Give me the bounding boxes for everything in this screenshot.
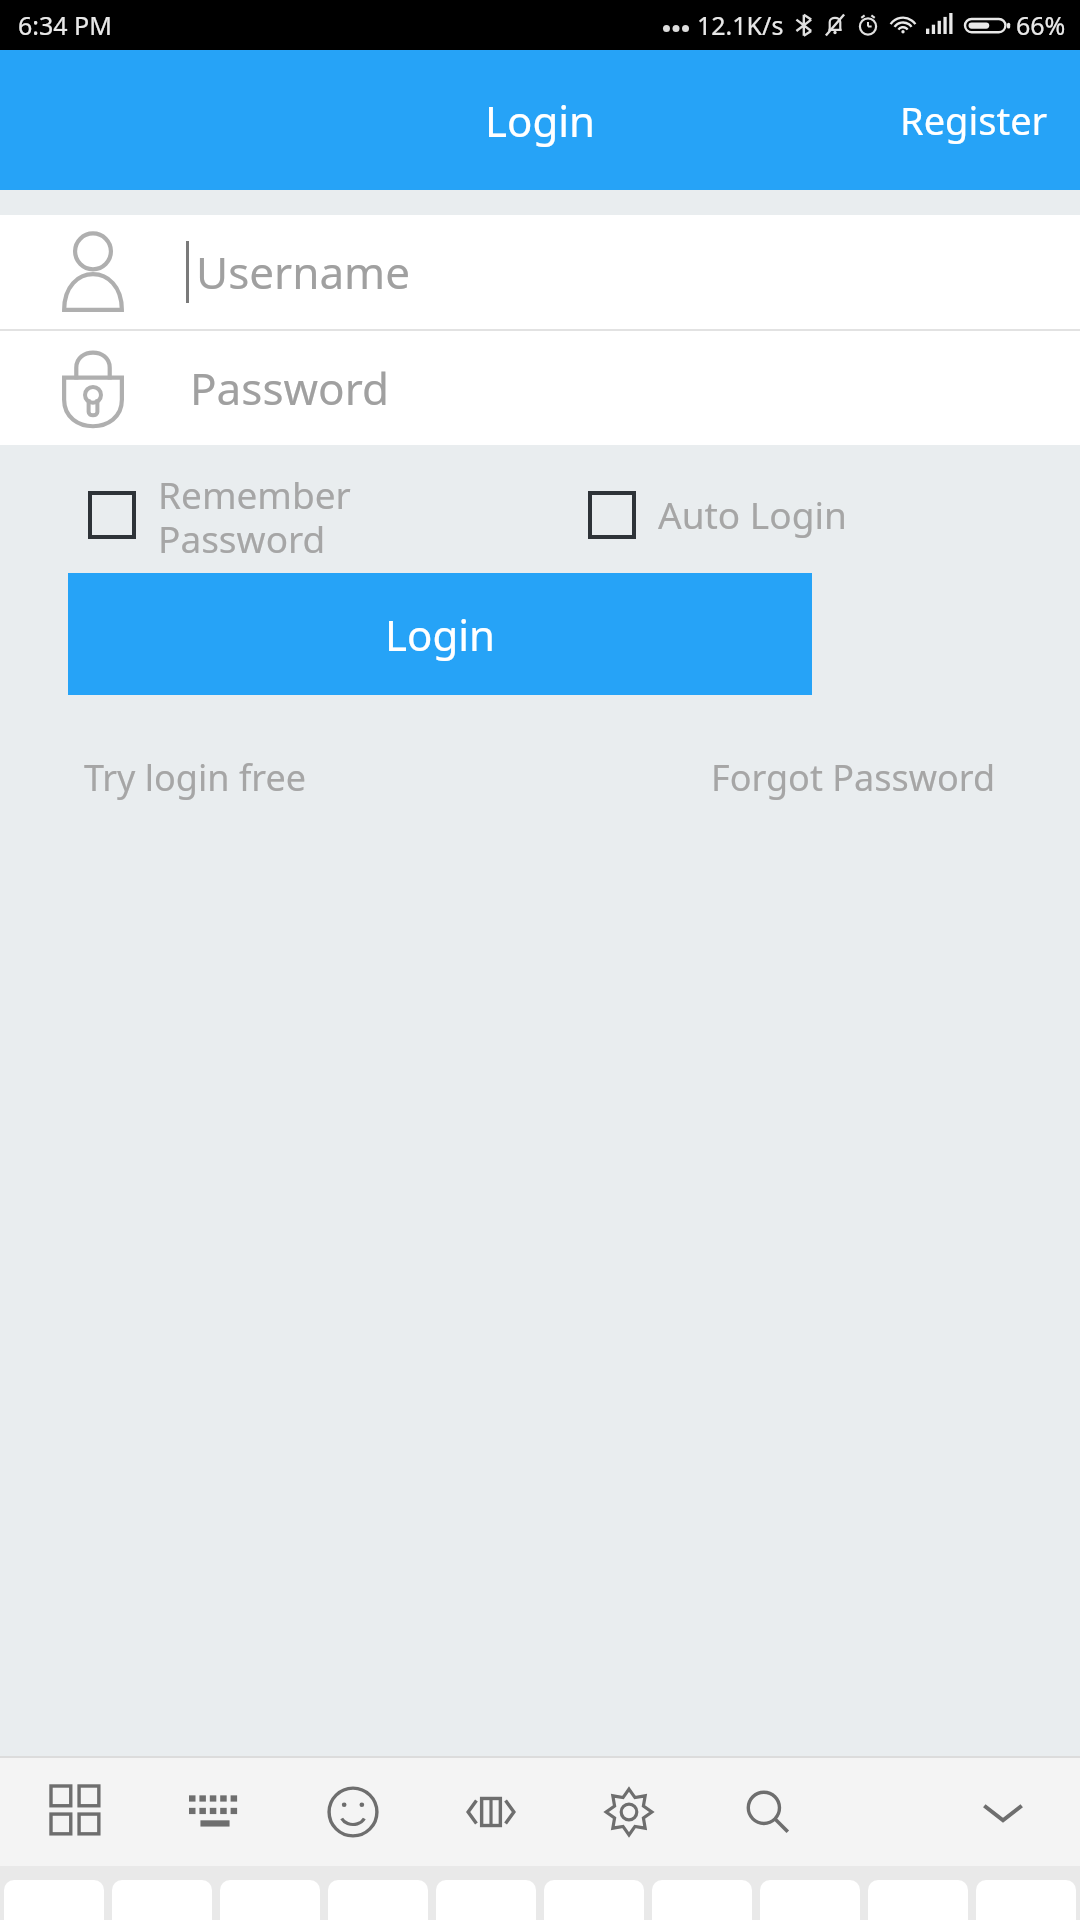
button[interactable]: Password [0, 331, 1080, 445]
button[interactable]: Remember Password [0, 463, 540, 573]
staticText: Auto Login [658, 489, 847, 539]
button[interactable]: Clipboard [448, 1769, 534, 1855]
button[interactable]: Login [68, 573, 812, 695]
staticText: 12.1K/s [697, 8, 784, 42]
button[interactable]: Hide keyboard [960, 1769, 1046, 1855]
button[interactable]: Try login free [84, 747, 307, 808]
staticText: Remember Password [158, 469, 398, 564]
button[interactable]: Forgot Password [711, 747, 996, 808]
button[interactable]: Auto Login [540, 463, 1080, 573]
staticText: Password [190, 358, 390, 418]
staticText: 66% [1016, 8, 1066, 42]
button[interactable]: Register [876, 88, 1080, 152]
staticText: Login [385, 606, 496, 663]
button[interactable]: Apps [34, 1769, 120, 1855]
button[interactable]: Search [724, 1769, 810, 1855]
button[interactable]: Username [0, 215, 1080, 329]
button[interactable]: Emoji [310, 1769, 396, 1855]
button[interactable]: Settings [586, 1769, 672, 1855]
staticText: 6:34 PM [18, 8, 112, 42]
staticText: Username [196, 242, 411, 302]
button[interactable]: Keyboard [172, 1769, 258, 1855]
button[interactable]: Login [467, 86, 614, 155]
